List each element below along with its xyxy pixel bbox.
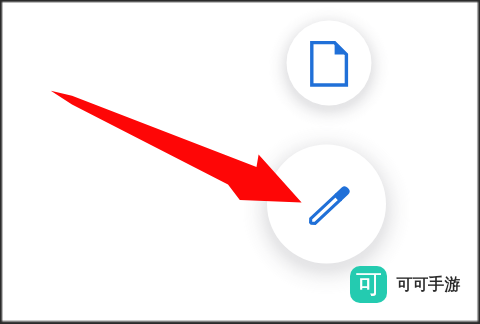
staticText: 可 <box>356 268 382 301</box>
staticText: 可可手游 <box>396 275 460 295</box>
